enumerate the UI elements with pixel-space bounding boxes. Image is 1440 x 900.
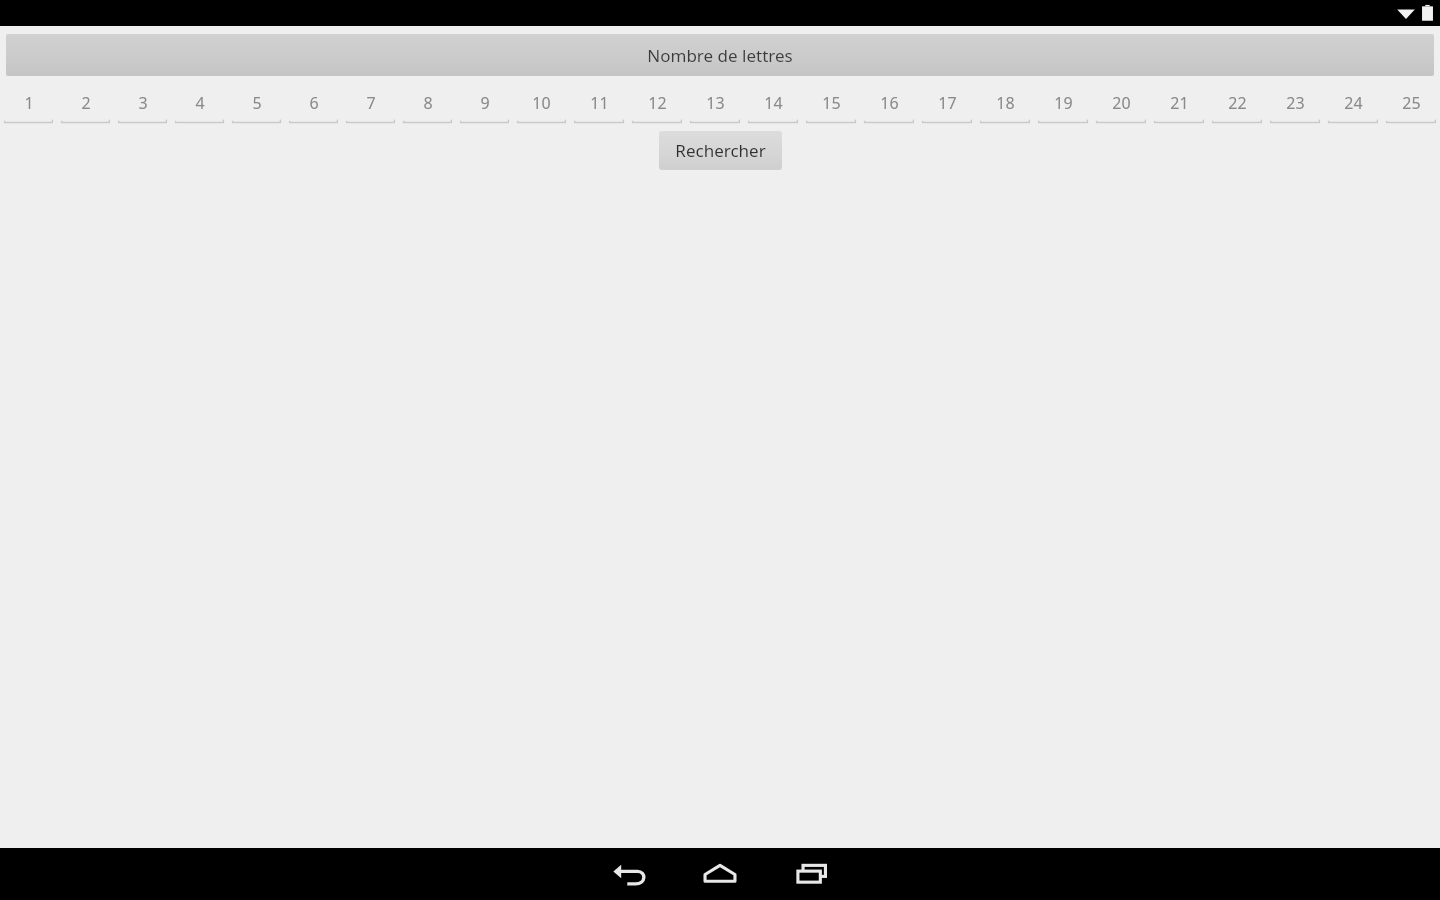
button[interactable]: 17 — [918, 84, 976, 124]
staticText: 16 — [880, 92, 899, 114]
staticText: 11 — [590, 92, 609, 114]
button[interactable]: Recent apps — [780, 848, 844, 900]
staticText: 12 — [648, 92, 667, 114]
staticText: 10 — [532, 92, 551, 114]
staticText: 6 — [309, 92, 319, 114]
button[interactable]: 18 — [976, 84, 1034, 124]
button[interactable]: 12 — [628, 84, 686, 124]
staticText: 17 — [938, 92, 957, 114]
button[interactable]: Home — [688, 848, 752, 900]
staticText: 14 — [764, 92, 783, 114]
button[interactable]: 15 — [802, 84, 860, 124]
button[interactable]: 19 — [1034, 84, 1092, 124]
staticText: 9 — [480, 92, 490, 114]
button[interactable]: 24 — [1324, 84, 1382, 124]
button[interactable]: 14 — [744, 84, 802, 124]
staticText: Rechercher — [675, 139, 766, 162]
button[interactable]: 13 — [686, 84, 744, 124]
button[interactable]: 23 — [1266, 84, 1324, 124]
button[interactable]: 9 — [456, 84, 513, 124]
button[interactable]: 6 — [285, 84, 342, 124]
button[interactable]: 21 — [1150, 84, 1208, 124]
staticText: 19 — [1054, 92, 1073, 114]
staticText: 4 — [195, 92, 205, 114]
staticText: 5 — [252, 92, 262, 114]
button[interactable]: 8 — [399, 84, 456, 124]
staticText: Nombre de lettres — [647, 44, 793, 67]
staticText: 8 — [423, 92, 433, 114]
staticText: 2 — [81, 92, 91, 114]
button[interactable]: 5 — [228, 84, 285, 124]
button[interactable]: 10 — [513, 84, 570, 124]
button[interactable]: 2 — [57, 84, 114, 124]
button[interactable]: 25 — [1382, 84, 1440, 124]
staticText: 24 — [1344, 92, 1363, 114]
button[interactable]: Rechercher — [659, 131, 782, 170]
staticText: 25 — [1402, 92, 1421, 114]
staticText: 13 — [706, 92, 725, 114]
button[interactable]: 7 — [342, 84, 399, 124]
button[interactable]: 1 — [0, 84, 57, 124]
button[interactable]: Back — [598, 848, 662, 900]
button[interactable]: 20 — [1092, 84, 1150, 124]
staticText: 15 — [822, 92, 841, 114]
staticText: 1 — [24, 92, 34, 114]
staticText: 20 — [1112, 92, 1131, 114]
button[interactable]: Nombre de lettres — [6, 34, 1434, 76]
staticText: 22 — [1228, 92, 1247, 114]
button[interactable]: 3 — [114, 84, 171, 124]
staticText: 18 — [996, 92, 1015, 114]
staticText: 21 — [1170, 92, 1189, 114]
button[interactable]: 22 — [1208, 84, 1266, 124]
button[interactable]: 16 — [860, 84, 918, 124]
button[interactable]: 11 — [570, 84, 628, 124]
staticText: 7 — [366, 92, 376, 114]
staticText: 3 — [138, 92, 148, 114]
staticText: 23 — [1286, 92, 1305, 114]
button[interactable]: 4 — [171, 84, 228, 124]
